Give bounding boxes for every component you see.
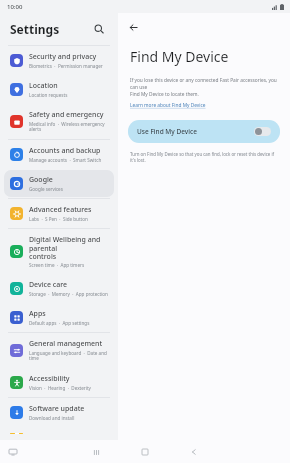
staticText: Find My Device (130, 47, 229, 66)
button[interactable]: Use Find My Device (128, 120, 280, 143)
staticText: Language and keyboard · Date and time (29, 350, 108, 362)
button[interactable]: Keyboard (6, 445, 20, 459)
button[interactable]: Back (186, 444, 202, 460)
staticText: Biometrics · Permission manager (29, 63, 103, 69)
staticText: General management (29, 339, 103, 349)
staticText: Storage · Memory · App protection (29, 291, 108, 297)
staticText: Screen time · App timers (29, 262, 85, 268)
button[interactable]: Advanced features (4, 200, 114, 227)
button[interactable]: Security and privacy (4, 47, 114, 74)
button[interactable]: Software update (4, 399, 114, 426)
staticText: Apps (29, 309, 46, 319)
button[interactable]: Recents (88, 444, 104, 460)
staticText: Location (29, 81, 58, 91)
staticText: Vision · Hearing · Dexterity (29, 385, 91, 391)
staticText: Software update (29, 404, 85, 414)
button[interactable]: Back (125, 19, 141, 35)
staticText: Advanced features (29, 205, 92, 215)
button[interactable]: Digital Wellbeing and parental controls (4, 230, 114, 273)
staticText: Digital Wellbeing and parental controls (29, 235, 108, 261)
staticText: Google (29, 175, 53, 185)
staticText: Accessibility (29, 374, 70, 384)
button[interactable]: Google (4, 170, 114, 197)
staticText: Use Find My Device (137, 127, 197, 136)
staticText: Medical info · Wireless emergency alerts (29, 121, 108, 133)
button[interactable]: Apps (4, 304, 114, 331)
button[interactable]: Accessibility (4, 369, 114, 396)
button[interactable]: Tips and user guide (4, 428, 114, 439)
staticText: Google services (29, 186, 63, 192)
staticText: Device care (29, 280, 68, 290)
staticText: If you lose this device or any connected… (130, 77, 280, 98)
button[interactable]: Device care (4, 275, 114, 302)
staticText: Download and install (29, 415, 75, 421)
staticText: Manage accounts · Smart Switch (29, 157, 102, 163)
staticText: Security and privacy (29, 52, 97, 62)
button[interactable]: Location (4, 76, 114, 103)
staticText: Accounts and backup (29, 146, 101, 156)
staticText: Default apps · App settings (29, 320, 90, 326)
staticText: Labs · S Pen · Side button (29, 216, 88, 222)
staticText: Settings (10, 21, 60, 37)
staticText: Turn on Find My Device so that you can f… (130, 151, 280, 163)
button[interactable]: Home (137, 444, 153, 460)
button[interactable]: General management (4, 334, 114, 367)
staticText: Safety and emergency (29, 110, 104, 120)
button[interactable]: Safety and emergency (4, 105, 114, 138)
button[interactable]: Search settings (90, 20, 108, 38)
button[interactable]: Accounts and backup (4, 141, 114, 168)
staticText: Location requests (29, 92, 68, 98)
button[interactable]: Learn more about Find My Device (130, 102, 206, 109)
staticText: 10:00 (7, 3, 23, 11)
other: Use Find My Device toggle (254, 127, 271, 136)
